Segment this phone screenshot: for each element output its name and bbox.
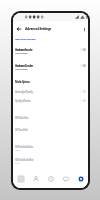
button[interactable]: HD Time Unit: [13, 128, 88, 136]
button[interactable]: HD Peak Audio Rate: [13, 158, 88, 166]
button[interactable]: Profile: [28, 170, 43, 188]
button[interactable]: HD Video Rate: [13, 116, 88, 124]
button[interactable]: Hardware Encoder: [13, 48, 88, 56]
button[interactable]: Settings: [73, 170, 88, 188]
button[interactable]: More options: [81, 26, 87, 32]
button[interactable]: Auto-adjust Quality: [13, 90, 88, 95]
button[interactable]: Quality of Service: [13, 99, 88, 104]
staticText: 1: [15, 132, 16, 135]
button[interactable]: Toggle: [80, 99, 86, 102]
staticText: HD Time Unit: [15, 128, 28, 132]
button[interactable]: Toggle: [80, 90, 86, 93]
button[interactable]: Back: [14, 24, 23, 33]
staticText: 48000: [15, 162, 20, 165]
staticText: Use if available: [15, 68, 28, 71]
staticText: SD Peak Audio Rate: [15, 145, 33, 149]
staticText: Media Options: [15, 80, 30, 84]
staticText: Hardware Decoder: [15, 64, 33, 68]
button[interactable]: Dashboard: [13, 170, 28, 188]
staticText: Advanced Settings: [25, 26, 51, 31]
staticText: Quality of Service: [15, 99, 31, 103]
staticText: Auto-adjust Quality: [15, 90, 33, 94]
staticText: 48000: [15, 149, 20, 152]
button[interactable]: SD Peak Audio Rate: [13, 145, 88, 153]
button[interactable]: Hardware Decoder: [13, 64, 88, 72]
staticText: HD Peak Audio Rate: [15, 158, 34, 162]
button[interactable]: Toggle: [80, 48, 86, 51]
staticText: Hardware Encoder: [15, 48, 33, 52]
staticText: Use if available: [15, 52, 28, 55]
button[interactable]: Messages: [58, 170, 73, 188]
staticText: HD Video Rate: [15, 116, 29, 120]
staticText: Video Codec Selection: [15, 38, 36, 41]
staticText: 1: [15, 120, 16, 123]
button[interactable]: Toggle: [80, 64, 86, 67]
button[interactable]: History: [43, 170, 58, 188]
